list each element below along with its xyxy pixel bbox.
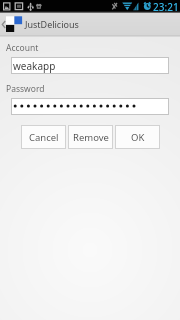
- button[interactable]: OK: [116, 126, 159, 148]
- staticText: weakapp: [13, 59, 56, 73]
- button[interactable]: Cancel: [22, 126, 65, 148]
- staticText: 23:21: [153, 0, 179, 13]
- staticText: Account: [6, 42, 39, 54]
- staticText: OK: [131, 131, 145, 144]
- staticText: JustDelicious: [25, 18, 79, 30]
- button[interactable]: weakapp: [12, 58, 168, 73]
- staticText: Remove: [73, 131, 109, 144]
- button[interactable]: [12, 99, 168, 114]
- staticText: Password: [6, 83, 45, 95]
- staticText: Cancel: [29, 131, 59, 144]
- button[interactable]: Remove: [69, 126, 112, 148]
- button[interactable]: Navigate up: [0, 13, 6, 35]
